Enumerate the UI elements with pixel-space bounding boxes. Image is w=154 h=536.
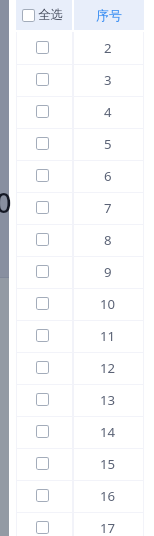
button[interactable]: Select — [16, 127, 72, 159]
staticText: 3 — [104, 71, 112, 89]
button[interactable]: Select — [16, 383, 72, 415]
button[interactable]: Select — [16, 415, 72, 447]
staticText: 9 — [104, 263, 112, 281]
staticText: 11 — [100, 327, 116, 345]
staticText: 5 — [104, 135, 112, 153]
button[interactable]: Select — [16, 447, 72, 479]
staticText: 2 — [104, 39, 112, 57]
other: Select — [37, 170, 48, 181]
other: Select — [37, 522, 48, 533]
button[interactable]: 序号 — [74, 0, 144, 30]
staticText: 12 — [100, 359, 116, 377]
other: Select — [37, 266, 48, 277]
other: Select — [37, 490, 48, 501]
staticText: 6 — [104, 167, 112, 185]
staticText: 7 — [104, 199, 112, 217]
other: Select — [23, 10, 34, 21]
staticText: 0 — [0, 184, 12, 221]
staticText: 4 — [104, 103, 112, 121]
button[interactable]: Select — [16, 0, 72, 30]
other: Select — [37, 330, 48, 341]
other: Select — [37, 74, 48, 85]
other: Select — [37, 298, 48, 309]
other: Select — [37, 234, 48, 245]
staticText: 16 — [100, 487, 116, 505]
button[interactable]: Select — [16, 287, 72, 319]
button[interactable]: Select — [16, 255, 72, 287]
staticText: 10 — [100, 295, 116, 313]
other: Select — [37, 138, 48, 149]
staticText: 13 — [100, 391, 116, 409]
button[interactable]: Select — [16, 95, 72, 127]
other: Select — [37, 106, 48, 117]
button[interactable]: Select — [16, 479, 72, 511]
other: Select — [37, 202, 48, 213]
button[interactable]: Select — [16, 31, 72, 63]
other: Select — [37, 458, 48, 469]
button[interactable]: Select — [16, 511, 72, 536]
button[interactable]: Select — [16, 159, 72, 191]
button[interactable]: Select — [16, 191, 72, 223]
other: Select — [37, 362, 48, 373]
staticText: 序号 — [96, 7, 122, 23]
button[interactable]: Select — [16, 223, 72, 255]
staticText: 全选 — [38, 7, 64, 23]
staticText: 15 — [100, 455, 116, 473]
button[interactable]: Select — [16, 319, 72, 351]
button[interactable]: Select — [16, 63, 72, 95]
other: Select — [37, 42, 48, 53]
staticText: 14 — [100, 423, 116, 441]
other: Select — [37, 394, 48, 405]
other: Select — [37, 426, 48, 437]
button[interactable]: Select — [16, 351, 72, 383]
staticText: 8 — [104, 231, 112, 249]
staticText: 17 — [100, 519, 116, 536]
